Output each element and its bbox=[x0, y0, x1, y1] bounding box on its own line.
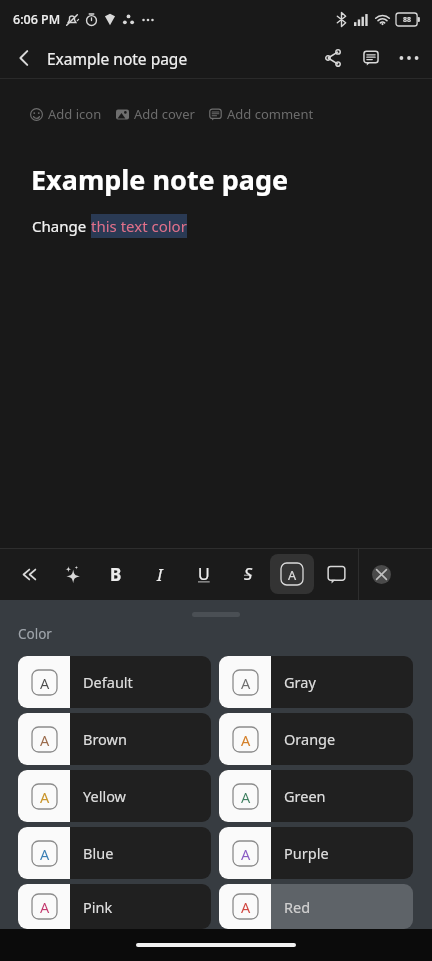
button[interactable]: Bold bbox=[94, 551, 138, 597]
staticText: Purple bbox=[284, 843, 329, 863]
staticText: Green bbox=[284, 786, 326, 806]
staticText: Yellow bbox=[83, 786, 127, 806]
staticText: A bbox=[241, 673, 251, 693]
staticText: Add icon bbox=[48, 105, 102, 123]
staticText: A bbox=[241, 844, 251, 864]
staticText: A bbox=[40, 897, 50, 917]
button[interactable]: Add cover bbox=[116, 105, 195, 123]
staticText: Pink bbox=[83, 897, 113, 917]
staticText: Example note page bbox=[47, 48, 188, 69]
staticText: I bbox=[157, 563, 163, 586]
button[interactable]: A bbox=[18, 884, 211, 929]
staticText: Blue bbox=[83, 843, 114, 863]
button[interactable]: Share bbox=[314, 39, 352, 77]
staticText: A bbox=[40, 673, 50, 693]
staticText: A bbox=[241, 730, 251, 750]
staticText: Gray bbox=[284, 672, 316, 692]
staticText: A bbox=[40, 787, 50, 807]
button[interactable]: Close toolbar bbox=[359, 548, 403, 600]
button[interactable]: Strikethrough bbox=[226, 551, 270, 597]
staticText: A bbox=[40, 844, 50, 864]
button[interactable]: Back bbox=[4, 38, 44, 78]
button[interactable]: A bbox=[219, 884, 413, 929]
button[interactable]: A bbox=[18, 713, 211, 765]
staticText: A bbox=[241, 787, 251, 807]
button[interactable]: A bbox=[219, 827, 413, 879]
button[interactable]: Underline bbox=[182, 551, 226, 597]
button[interactable]: Text color bbox=[270, 554, 314, 594]
button[interactable]: A bbox=[219, 713, 413, 765]
button[interactable]: Italic bbox=[138, 551, 182, 597]
staticText: A bbox=[40, 730, 50, 750]
staticText: 88 bbox=[403, 15, 412, 25]
staticText: Red bbox=[284, 897, 311, 917]
button[interactable]: More options bbox=[390, 39, 428, 77]
staticText: U bbox=[198, 563, 210, 585]
staticText: A bbox=[241, 897, 251, 917]
button[interactable]: A bbox=[18, 827, 211, 879]
button[interactable]: Add comment bbox=[209, 105, 314, 123]
button[interactable]: Comments bbox=[352, 39, 390, 77]
staticText: 6:06 PM bbox=[13, 11, 61, 28]
button[interactable]: A bbox=[219, 656, 413, 708]
staticText: S bbox=[244, 563, 253, 585]
staticText: Orange bbox=[284, 729, 336, 749]
staticText: Change bbox=[32, 216, 91, 236]
staticText: this text color bbox=[91, 216, 187, 236]
button[interactable]: A bbox=[18, 770, 211, 822]
button[interactable]: Example note page bbox=[31, 161, 289, 198]
button[interactable]: AI assist bbox=[50, 551, 94, 597]
staticText: Brown bbox=[83, 729, 127, 749]
staticText: A bbox=[288, 566, 297, 583]
staticText: B bbox=[110, 563, 122, 586]
button[interactable]: Comment bbox=[314, 551, 358, 597]
staticText: Default bbox=[83, 672, 133, 692]
button[interactable]: Add icon bbox=[30, 105, 102, 123]
staticText: Color bbox=[18, 625, 52, 643]
staticText: Add cover bbox=[134, 105, 195, 123]
button[interactable]: Collapse toolbar bbox=[6, 551, 50, 597]
button[interactable]: A bbox=[18, 656, 211, 708]
button[interactable]: A bbox=[219, 770, 413, 822]
staticText: Add comment bbox=[227, 105, 314, 123]
